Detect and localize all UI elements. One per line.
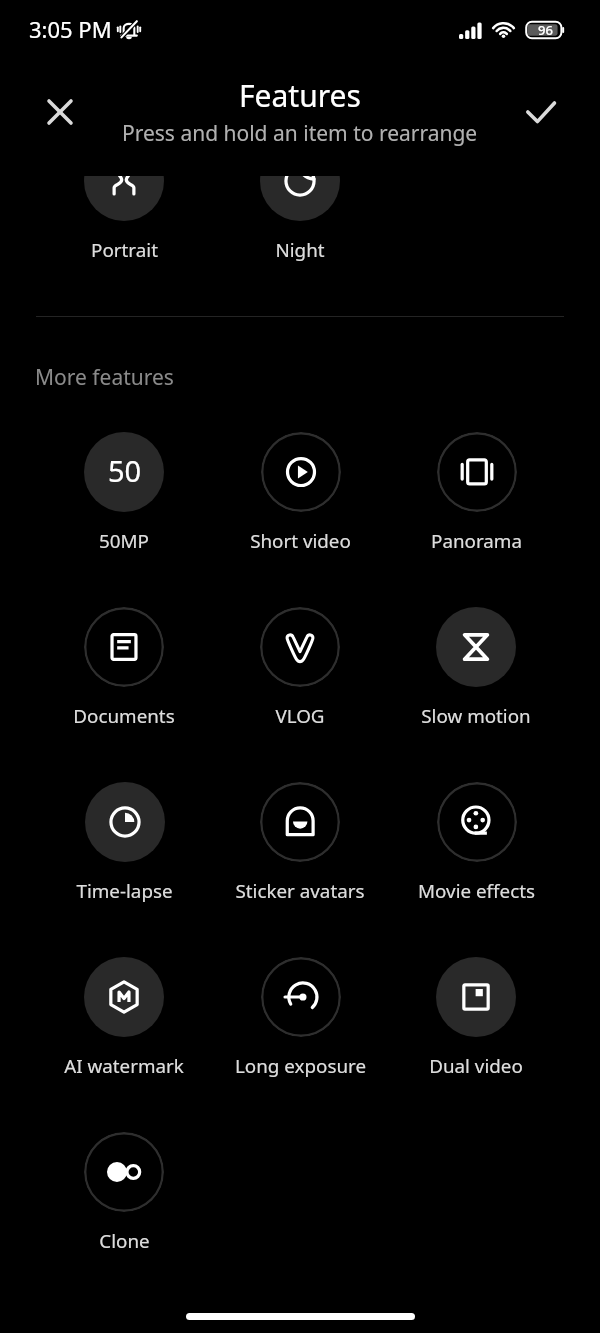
staticText: Clone bbox=[99, 1228, 150, 1254]
button[interactable]: Sticker avatars bbox=[212, 774, 388, 910]
staticText: Dual video bbox=[429, 1053, 523, 1079]
button[interactable]: Documents bbox=[36, 599, 212, 735]
staticText: VLOG bbox=[275, 703, 325, 729]
staticText: Short video bbox=[250, 528, 351, 554]
button[interactable]: Clone bbox=[36, 1124, 212, 1260]
button[interactable]: AI watermark bbox=[36, 949, 212, 1085]
staticText: Documents bbox=[73, 703, 175, 729]
staticText: Movie effects bbox=[418, 878, 535, 904]
button[interactable]: VLOG bbox=[212, 599, 388, 735]
button[interactable]: Close bbox=[35, 87, 85, 137]
staticText: Portrait bbox=[91, 237, 158, 263]
button[interactable]: Portrait bbox=[36, 176, 212, 269]
button[interactable]: Long exposure bbox=[212, 949, 388, 1085]
staticText: Sticker avatars bbox=[235, 878, 365, 904]
staticText: Features bbox=[239, 75, 361, 116]
staticText: Long exposure bbox=[235, 1053, 366, 1079]
staticText: 3:05 PM bbox=[29, 14, 112, 44]
staticText: Press and hold an item to rearrange bbox=[122, 119, 478, 148]
staticText: Slow motion bbox=[421, 703, 531, 729]
button[interactable]: Night bbox=[212, 176, 388, 269]
staticText: Panorama bbox=[431, 528, 522, 554]
button[interactable]: Short video bbox=[212, 424, 388, 560]
staticText: Night bbox=[275, 237, 325, 263]
button[interactable]: Movie effects bbox=[388, 774, 564, 910]
staticText: 50MP bbox=[99, 528, 149, 554]
staticText: 96 bbox=[538, 21, 553, 39]
button[interactable]: Slow motion bbox=[388, 599, 564, 735]
staticText: Time-lapse bbox=[76, 878, 173, 904]
button[interactable]: Dual video bbox=[388, 949, 564, 1085]
button[interactable]: Time-lapse bbox=[36, 774, 212, 910]
button[interactable]: 50 bbox=[36, 424, 212, 560]
button[interactable]: Confirm bbox=[516, 87, 566, 137]
button[interactable]: Panorama bbox=[388, 424, 564, 560]
staticText: AI watermark bbox=[64, 1053, 184, 1079]
staticText: More features bbox=[35, 363, 174, 392]
staticText: 50 bbox=[108, 451, 142, 490]
